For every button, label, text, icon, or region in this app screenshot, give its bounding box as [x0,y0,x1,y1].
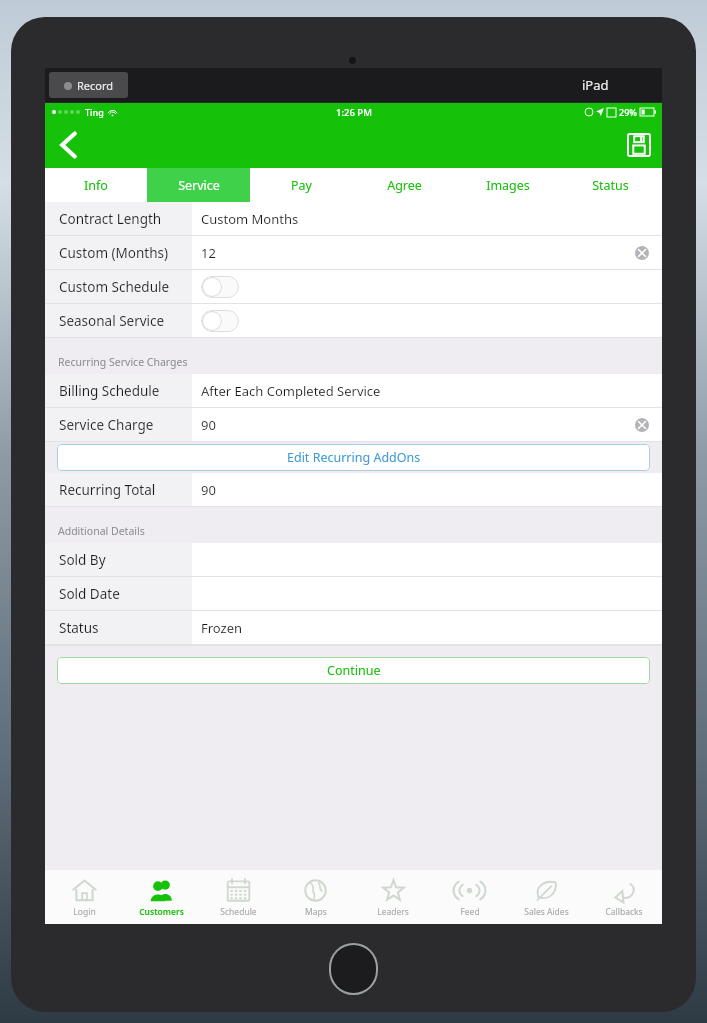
staticText: Custom (Months) [59,244,169,262]
staticText: Service [178,177,220,194]
staticText: Maps [305,906,327,918]
staticText: Service Charge [59,416,154,434]
staticText: After Each Completed Service [201,382,381,400]
button[interactable]: Maps [277,870,354,924]
staticText: Leaders [377,906,409,918]
staticText: 1:26 PM [336,106,372,119]
button[interactable]: Back [45,122,91,168]
staticText: Sales Aides [524,906,569,918]
button[interactable]: Login [45,870,123,924]
staticText: Custom Schedule [59,278,170,296]
staticText: Login [73,906,96,918]
button[interactable]: Status [559,168,662,202]
staticText: Billing Schedule [59,382,160,400]
staticText: Seasonal Service [59,312,165,330]
staticText: Feed [460,906,480,918]
staticText: 29% [619,106,637,118]
button[interactable]: Clear [631,242,653,264]
button[interactable]: Customers [123,870,200,924]
button[interactable]: Save [616,122,662,168]
button[interactable]: Record [49,72,128,98]
staticText: Recurring Total [59,481,156,499]
button[interactable]: Sales Aides [508,870,585,924]
button[interactable] [201,276,239,298]
staticText: Record [77,78,114,93]
button[interactable]: Continue [57,657,650,684]
staticText: iPad [582,76,609,94]
button[interactable]: Agree [353,168,456,202]
button[interactable]: Edit Recurring AddOns [57,444,650,471]
staticText: Recurring Service Charges [58,355,188,369]
button[interactable] [201,310,239,332]
staticText: Status [59,619,99,637]
button[interactable]: Clear [631,414,653,436]
staticText: Edit Recurring AddOns [287,449,421,466]
staticText: Agree [387,177,422,194]
button[interactable]: Pay [250,168,353,202]
staticText: Ting [85,106,104,118]
staticText: Status [592,177,629,194]
staticText: Continue [327,662,381,679]
staticText: 90 [201,481,216,499]
staticText: Info [84,177,108,194]
staticText: Contract Length [59,210,162,228]
staticText: Sold Date [59,585,120,603]
button[interactable]: Images [456,168,559,202]
button[interactable]: Schedule [200,870,277,924]
button[interactable]: Feed [431,870,508,924]
button[interactable]: Leaders [354,870,431,924]
button[interactable]: Callbacks [585,870,662,924]
staticText: Images [486,177,530,194]
staticText: Pay [291,177,312,194]
staticText: Additional Details [58,524,145,538]
button[interactable]: Service [147,168,250,202]
staticText: Customers [139,906,184,918]
staticText: Schedule [220,906,257,918]
staticText: 90 [201,416,216,434]
staticText: Sold By [59,551,106,569]
button[interactable]: Info [45,168,147,202]
staticText: 12 [201,244,216,262]
staticText: Frozen [201,619,243,637]
staticText: Custom Months [201,210,299,228]
staticText: Callbacks [605,906,643,918]
